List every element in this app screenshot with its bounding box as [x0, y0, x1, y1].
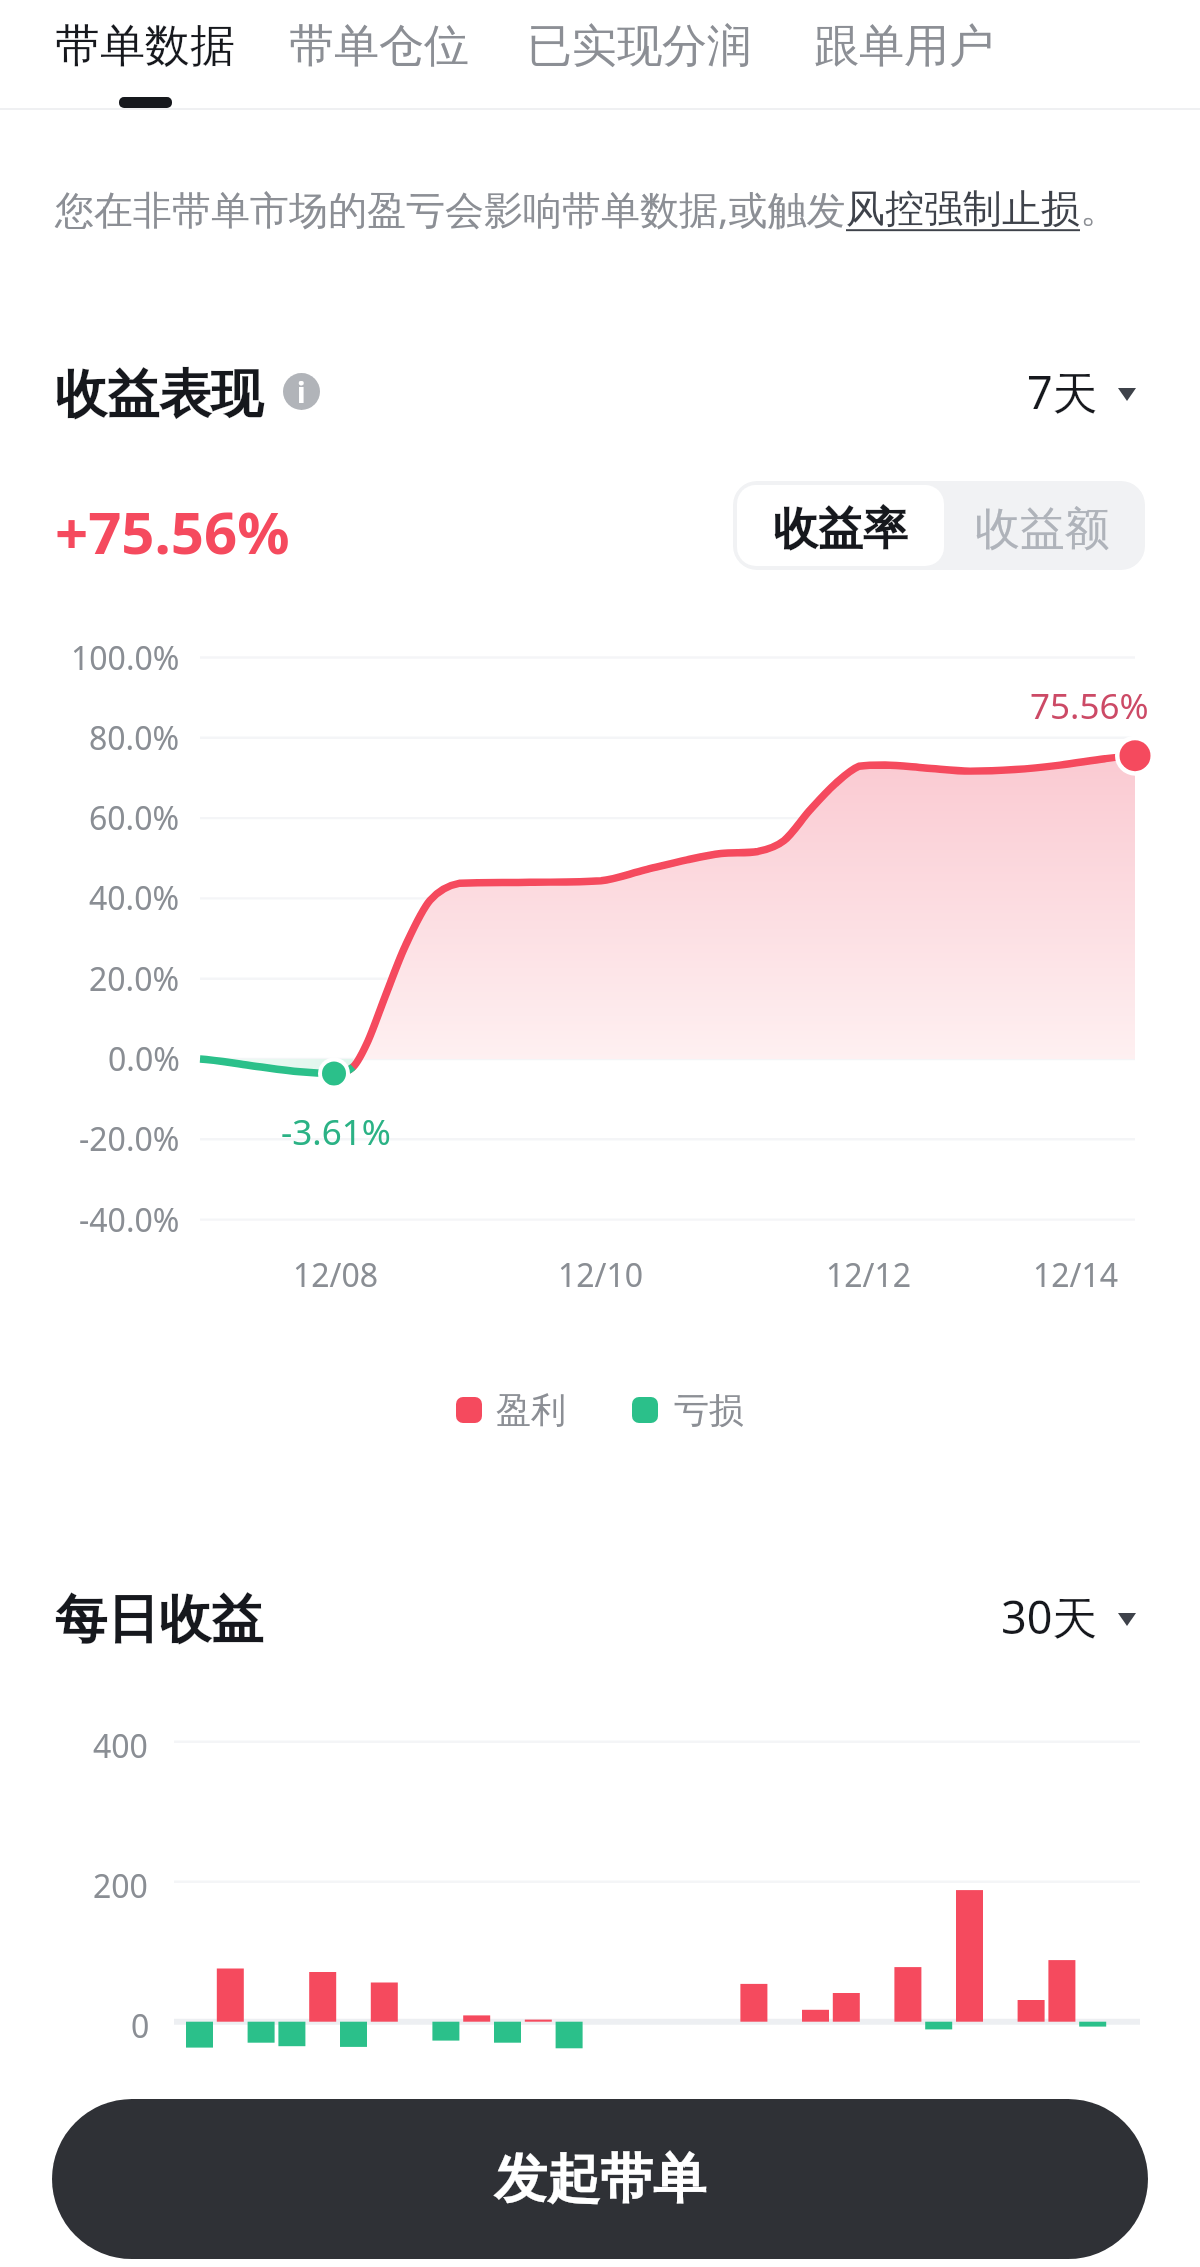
staticText: -20.0% [79, 1117, 180, 1161]
button[interactable]: 带单数据 [55, 6, 235, 108]
button[interactable]: 跟单用户 [814, 6, 994, 97]
staticText: 20.0% [89, 957, 180, 1001]
staticText: 您在非带单市场的盈亏会影响带单数据,或触发 [55, 182, 846, 235]
button[interactable]: 7天 [1027, 361, 1136, 422]
button[interactable]: 30天 [1001, 1586, 1136, 1647]
staticText: 收益率 [773, 501, 908, 558]
staticText: 40.0% [89, 876, 180, 920]
staticText: +75.56% [55, 492, 290, 571]
staticText: 0.0% [108, 1037, 180, 1081]
staticText: 跟单用户 [814, 18, 994, 75]
staticText: 带单数据 [55, 18, 235, 75]
button[interactable]: 带单仓位 [289, 6, 469, 97]
button[interactable]: 收益率 [737, 485, 944, 566]
staticText: 每日收益 [55, 1587, 263, 1653]
staticText: 7天 [1027, 361, 1098, 422]
button[interactable]: 收益额 [944, 485, 1141, 566]
staticText: -40.0% [79, 1198, 180, 1242]
staticText: 100.0% [71, 636, 180, 680]
staticText: 盈利 [496, 1388, 566, 1432]
staticText: 0 [131, 2004, 150, 2048]
staticText: 。 [1080, 184, 1119, 233]
staticText: 带单仓位 [289, 18, 469, 75]
staticText: 12/12 [826, 1253, 912, 1297]
staticText: 收益表现 [55, 362, 263, 428]
staticText: 30天 [1001, 1586, 1098, 1647]
staticText: 12/08 [293, 1253, 379, 1297]
staticText: 亏损 [674, 1388, 744, 1432]
staticText: 400 [93, 1724, 148, 1768]
staticText: 收益额 [975, 501, 1110, 558]
staticText: 80.0% [89, 716, 180, 760]
staticText: 已实现分润 [527, 18, 752, 75]
staticText: 12/10 [558, 1253, 644, 1297]
staticText: -3.61% [281, 1108, 391, 1156]
staticText: 发起带单 [494, 2146, 706, 2213]
staticText: 75.56% [1030, 682, 1149, 730]
button[interactable]: 风控强制止损 [846, 184, 1080, 233]
button[interactable]: Info [283, 373, 320, 410]
staticText: 200 [93, 1864, 148, 1908]
button[interactable]: 已实现分润 [527, 6, 752, 97]
staticText: 60.0% [89, 796, 180, 840]
button[interactable]: 发起带单 [52, 2099, 1148, 2259]
staticText: 12/14 [1033, 1253, 1119, 1297]
staticText: i [297, 373, 306, 410]
